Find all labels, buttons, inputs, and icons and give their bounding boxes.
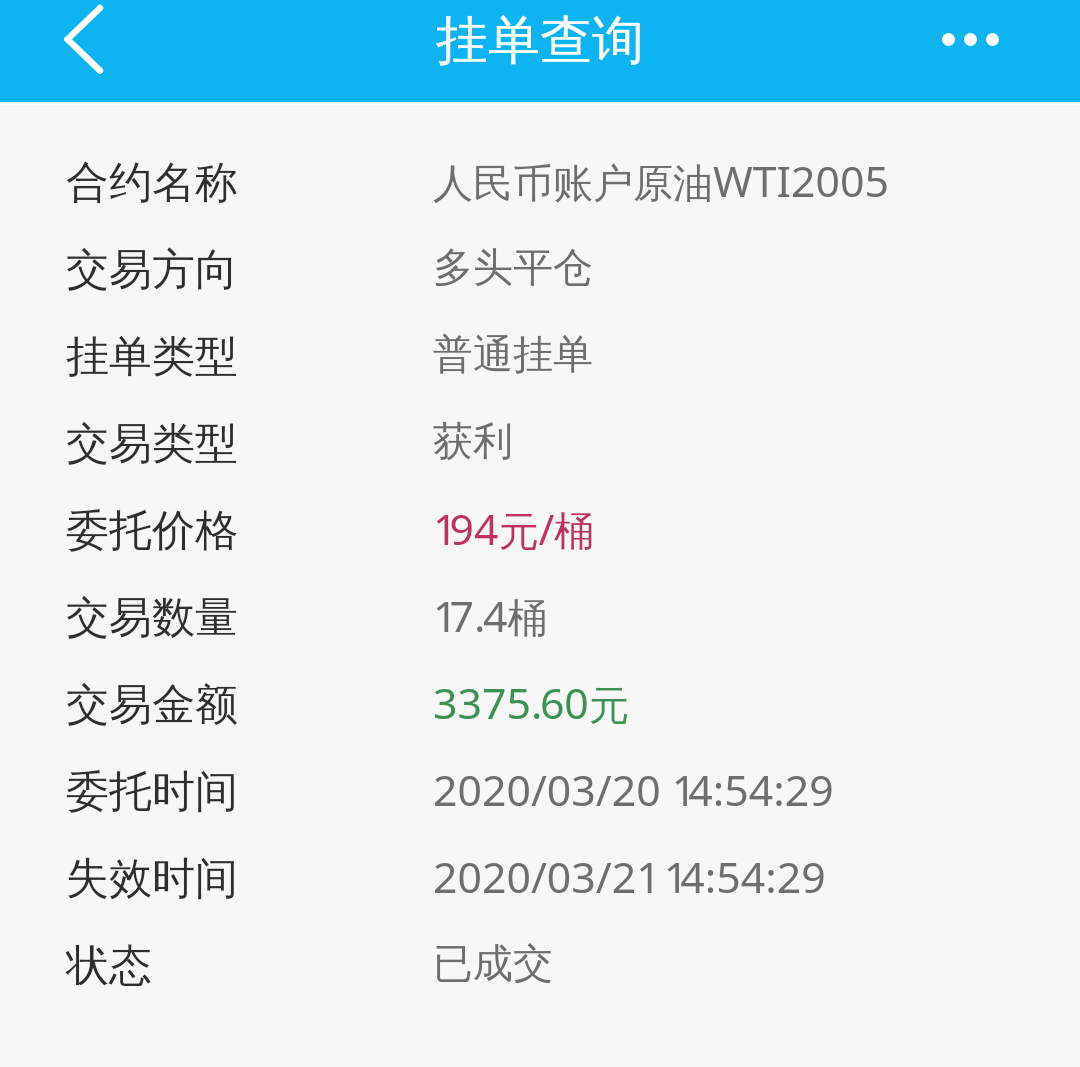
button[interactable]: 交易方向	[0, 226, 1080, 313]
staticText: 委托时间	[66, 765, 238, 819]
button[interactable]: 状态	[0, 922, 1080, 1009]
staticText: 194元/桶	[433, 499, 595, 557]
staticText: 2020/03/21 14:54:29	[433, 847, 826, 905]
staticText: 挂单类型	[66, 330, 238, 384]
button[interactable]: 委托时间	[0, 748, 1080, 835]
staticText: 2020/03/20 14:54:29	[433, 760, 834, 818]
button[interactable]: Back	[28, 0, 138, 80]
staticText: 合约名称	[66, 156, 238, 210]
staticText: 3375.60元	[433, 673, 629, 731]
staticText: 多头平仓	[433, 242, 593, 292]
staticText: 失效时间	[66, 852, 238, 906]
staticText: 获利	[433, 416, 513, 466]
staticText: 挂单查询	[436, 8, 644, 74]
staticText: 交易数量	[66, 591, 238, 645]
staticText: 已成交	[433, 938, 553, 988]
button[interactable]: 失效时间	[0, 835, 1080, 922]
button[interactable]: More options	[942, 33, 999, 46]
button[interactable]: 交易金额	[0, 661, 1080, 748]
staticText: 人民币账户原油WTI2005	[433, 151, 890, 209]
button[interactable]: 交易数量	[0, 574, 1080, 661]
button[interactable]: 合约名称	[0, 139, 1080, 226]
button[interactable]: 委托价格	[0, 487, 1080, 574]
staticText: 交易方向	[66, 243, 238, 297]
staticText: 17.4桶	[433, 586, 548, 644]
staticText: 委托价格	[66, 504, 238, 558]
staticText: 交易金额	[66, 678, 238, 732]
button[interactable]: 交易类型	[0, 400, 1080, 487]
staticText: 交易类型	[66, 417, 238, 471]
button[interactable]: 挂单类型	[0, 313, 1080, 400]
staticText: 状态	[66, 939, 152, 993]
staticText: 普通挂单	[433, 329, 593, 379]
